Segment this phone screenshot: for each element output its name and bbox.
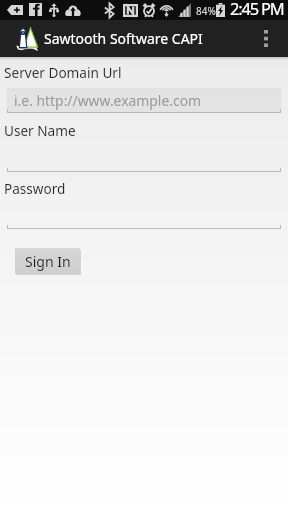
staticText: Sawtooth Software CAPI <box>44 29 203 48</box>
staticText: Sign In <box>25 252 71 271</box>
button[interactable]: More options <box>255 20 277 57</box>
staticText: 2:45 PM <box>230 0 284 17</box>
button[interactable]: Sign In <box>15 248 80 274</box>
button[interactable]: i.e. http://www.example.com <box>7 88 281 112</box>
staticText: i.e. http://www.example.com <box>14 91 202 110</box>
staticText: User Name <box>4 121 76 140</box>
staticText: Server Domain Url <box>4 63 122 82</box>
staticText: 84% <box>196 4 216 18</box>
button[interactable] <box>7 205 281 229</box>
staticText: Password <box>4 179 66 198</box>
